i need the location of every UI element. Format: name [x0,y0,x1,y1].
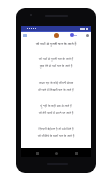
staticText: कुछ तेरे से गमों चार के आते हैं [21,64,91,68]
staticText: जो जीतिये के बातों चार के आते हैं [21,134,91,138]
button[interactable]: Back [33,149,41,157]
staticText: ज़िन्दगी बेईमान है तो उसे मिले हैं [21,127,91,131]
staticText: जो गमों से गुजरी चार के आते हैं [21,41,91,46]
button[interactable]: Recents [72,149,80,157]
staticText: मेरे बारे में लिखती चार के आते हैं [21,88,91,92]
staticText: जो तेरी बातों में सपने पर आते हैं [21,111,91,115]
staticText: यूँ नहीं के कही सब से आते हैं [21,104,91,108]
button[interactable]: App logo [54,33,59,38]
staticText: आशा रहा के कोई जीवनी सेवक [21,81,91,85]
staticText: जो गमों से गुजरी चार के आते हैं [21,57,91,61]
button[interactable]: Search [86,34,89,37]
button[interactable]: Menu [23,34,27,37]
button[interactable]: Home [52,149,60,157]
